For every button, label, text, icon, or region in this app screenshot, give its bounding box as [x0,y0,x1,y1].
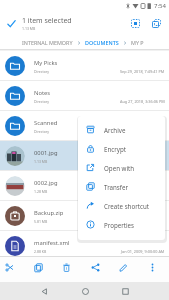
button[interactable]: Create shortcut [78,196,165,215]
button[interactable]: My Picks [0,51,169,81]
button[interactable] [60,261,73,274]
button[interactable]: Backup.zip [0,201,169,231]
button[interactable] [89,261,102,274]
staticText: Open with [104,164,135,172]
staticText: Directory [34,99,50,104]
staticText: 0002.jpg [34,179,58,187]
button[interactable]: Encrypt [78,139,165,158]
staticText: 1.28 MB [34,189,48,194]
button[interactable]: Properties [78,215,165,234]
staticText: 2.88 KB [34,249,47,254]
button[interactable] [37,284,51,298]
button[interactable] [3,261,16,274]
staticText: Properties [104,221,135,229]
button[interactable]: Scanned [0,111,169,141]
button[interactable]: Transfer [78,177,165,196]
staticText: 1.13 MB [34,159,48,164]
staticText: Directory [34,129,50,134]
staticText: 7:54 [154,2,166,10]
staticText: Scanned [34,119,58,127]
staticText: 5.81 MB [34,219,48,224]
button[interactable] [118,284,132,298]
button[interactable] [117,261,130,274]
staticText: manifest.xml [34,239,70,247]
button[interactable]: 0002.jpg [0,171,169,201]
staticText: Sep 29, 2018, 7:49:41 PM [120,69,165,74]
button[interactable]: manifest.xml [0,231,169,261]
staticText: Jan 01, 2009, 9:00:00 AM [121,249,165,254]
staticText: 1.13 MB [22,26,36,31]
staticText: Backup.zip [34,209,64,217]
staticText: Archive [104,126,126,134]
staticText: Transfer [104,183,128,191]
staticText: 0001.jpg [34,149,58,157]
button[interactable] [32,261,45,274]
staticText: Encrypt [104,145,126,153]
button[interactable]: Archive [78,120,165,139]
button[interactable]: Notes [0,81,169,111]
staticText: Directory [34,69,50,74]
button[interactable]: DOCUMENTS [85,39,119,46]
button[interactable]: Open with [78,158,165,177]
staticText: Create shortcut [104,202,149,210]
staticText: Aug 27, 2018, 3:36:06 PM [120,99,165,104]
staticText: 1 item selected [22,16,72,26]
button[interactable] [78,284,92,298]
button[interactable] [129,17,141,29]
button[interactable]: MY P [131,39,144,46]
staticText: Notes [34,89,51,97]
button[interactable] [146,261,159,274]
button[interactable] [7,19,16,28]
button[interactable]: INTERNAL MEMORY [22,39,73,46]
button[interactable] [150,17,162,29]
button[interactable]: 0001.jpg [0,141,169,171]
staticText: My Picks [34,59,58,67]
